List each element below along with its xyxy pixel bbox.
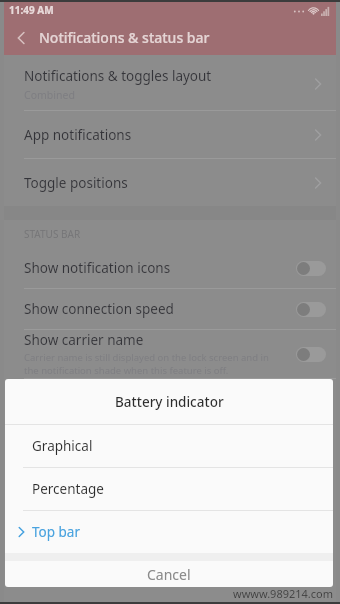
button[interactable]: Toggle Show connection speed (296, 302, 326, 317)
staticText: Toggle positions (24, 174, 128, 192)
button[interactable]: Show connection speed (0, 289, 340, 329)
staticText: Notifications & toggles layout (24, 67, 212, 85)
button[interactable]: Notifications & toggles layout (0, 58, 340, 110)
staticText: Show carrier name (24, 331, 144, 349)
staticText: Cancel (147, 565, 191, 584)
staticText: 11:49 AM (9, 3, 54, 17)
staticText: Battery indicator (115, 393, 224, 411)
staticText: Top bar (32, 523, 80, 541)
button[interactable]: Toggle Show carrier name (296, 347, 326, 362)
button[interactable]: Graphical (5, 425, 333, 467)
staticText: Show connection speed (24, 300, 174, 318)
staticText: Notifications & status bar (39, 28, 210, 47)
staticText: Show notification icons (24, 259, 171, 277)
button[interactable]: Back (14, 28, 210, 47)
staticText: Percentage (32, 480, 104, 498)
button[interactable]: Percentage (5, 468, 333, 510)
button[interactable]: Toggle positions (0, 159, 340, 206)
staticText: STATUS BAR (24, 227, 81, 241)
button[interactable]: Show carrier name (0, 330, 340, 378)
staticText: App notifications (24, 126, 132, 144)
button[interactable]: Show notification icons (0, 248, 340, 288)
staticText: Graphical (32, 437, 93, 455)
staticText: Combined (24, 88, 75, 102)
button[interactable]: App notifications (0, 111, 340, 158)
staticText: Carrier name is still displayed on the l… (24, 351, 269, 377)
staticText: wwww.989214.com (233, 586, 334, 601)
button[interactable]: Cancel (5, 561, 333, 587)
button[interactable]: Top bar (5, 511, 333, 553)
staticText: Show on lock screen (24, 390, 148, 408)
button[interactable]: Toggle Show notification icons (296, 261, 326, 276)
